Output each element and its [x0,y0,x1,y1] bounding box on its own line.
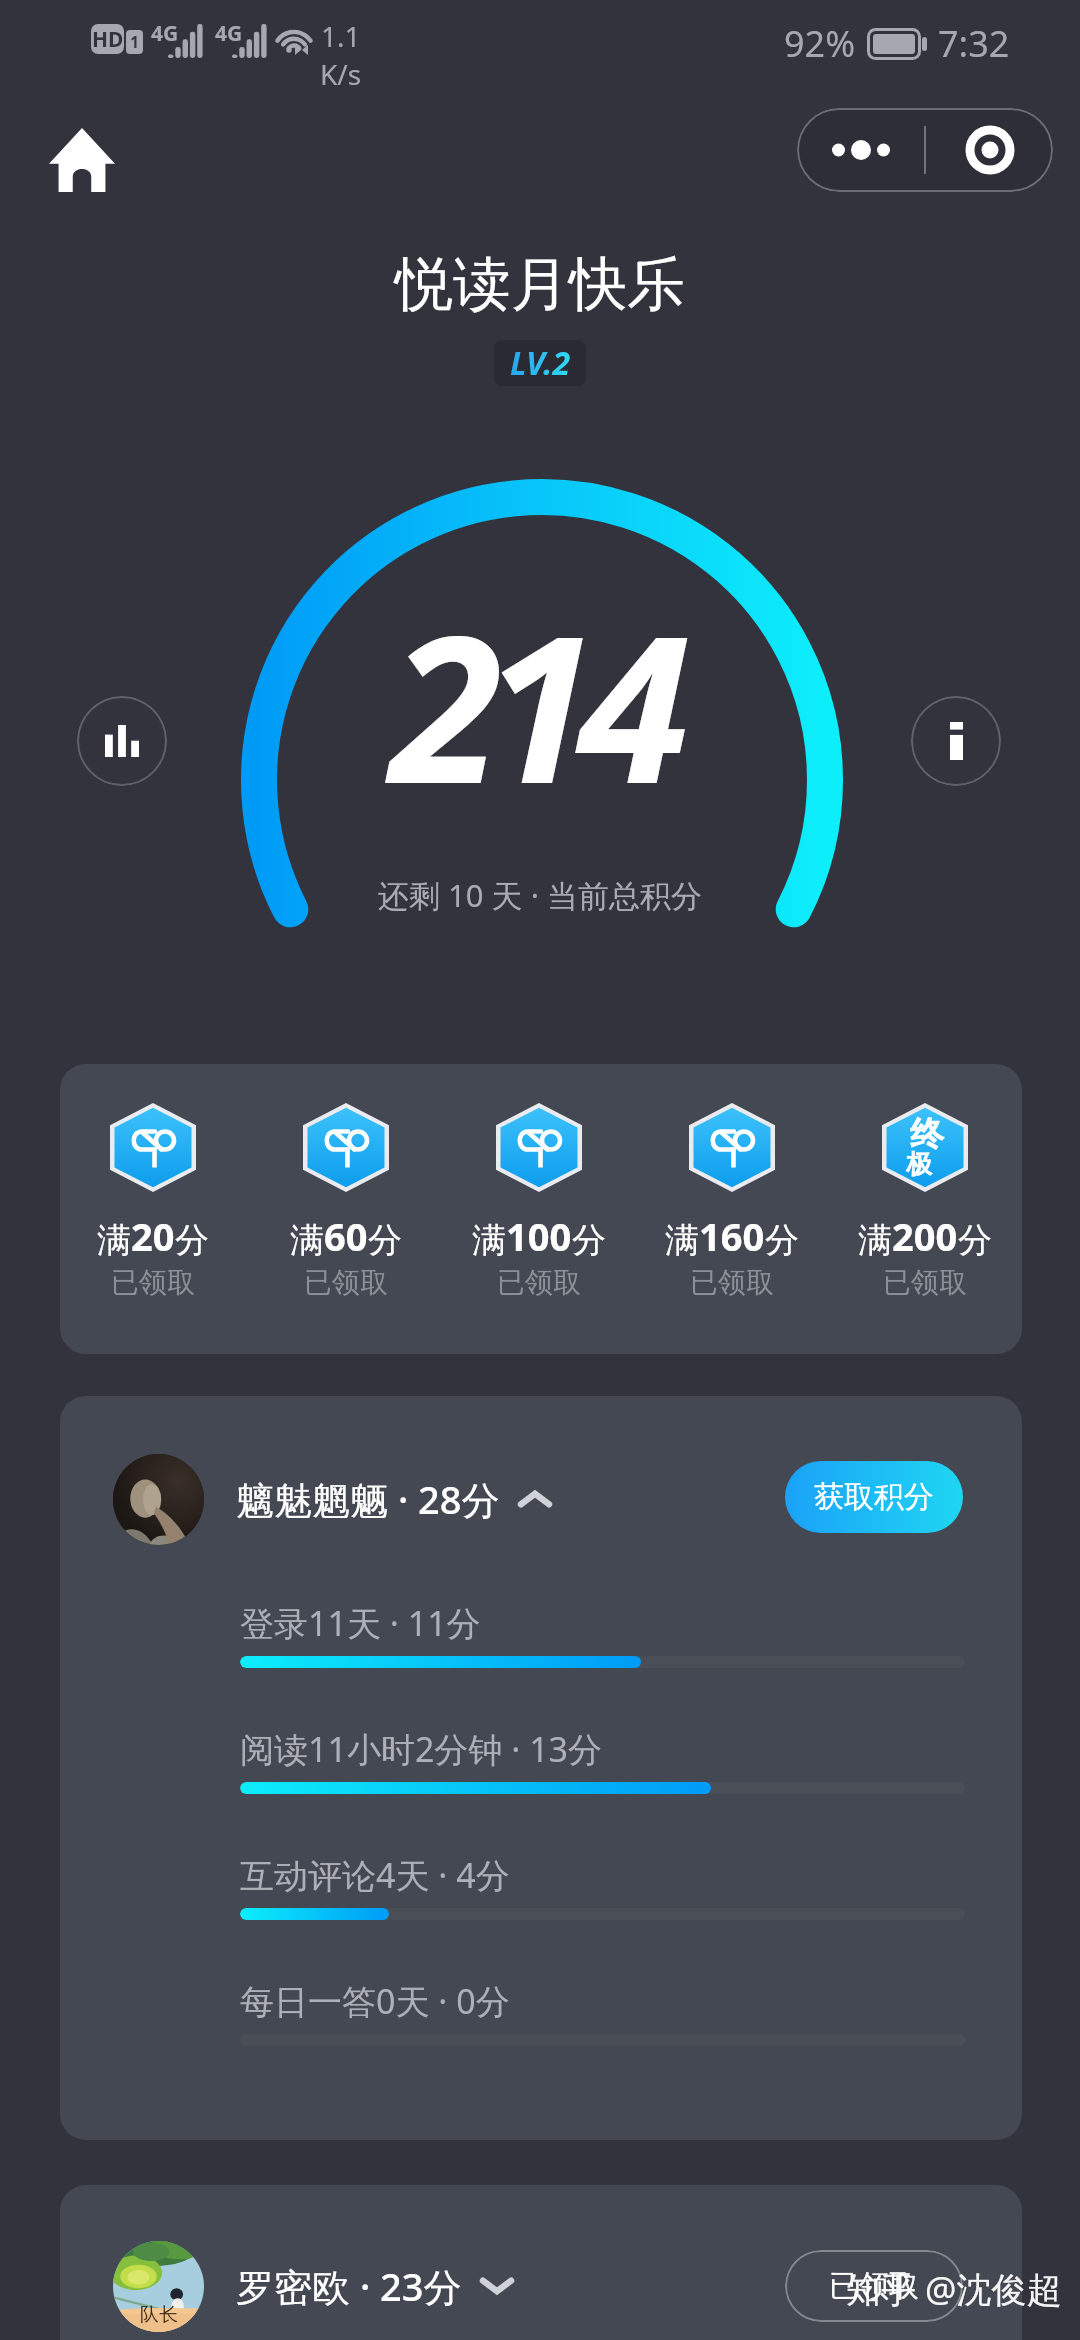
staticText: 200 [892,1210,958,1262]
button[interactable]: Statistics [77,696,167,786]
button[interactable]: 获取积分 [785,1461,963,1533]
staticText: 60 [324,1210,368,1262]
button[interactable]: Close mini program [926,108,1053,192]
staticText: 160 [699,1210,765,1262]
staticText: 分 [572,1219,606,1262]
staticText: 获取积分 [814,1478,934,1516]
button[interactable]: 满 [447,1103,631,1300]
button[interactable]: Home [36,112,128,208]
button[interactable]: 魑魅魍魉 · 28分 [113,1453,673,1545]
staticText: 已领取 [304,1265,388,1300]
staticText: 100 [506,1210,572,1262]
staticText: 已领取 [883,1265,967,1300]
button[interactable]: Information [911,696,1001,786]
staticText: 满 [858,1219,892,1262]
staticText: 悦读月快乐 [395,248,685,321]
staticText: 分 [765,1219,799,1262]
staticText: 满 [97,1219,131,1262]
staticText: 极 [906,1148,932,1181]
staticText: 7:32 [938,19,1010,68]
staticText: 4G [215,19,243,48]
staticText: 还剩 10 天 · 当前总积分 [378,874,703,916]
staticText: 终 [910,1113,944,1156]
staticText: 登录11天 · 11分 [240,1600,481,1646]
staticText: HD [92,25,124,54]
button[interactable]: 满 [254,1103,438,1300]
staticText: 1 [130,31,140,53]
staticText: K/s [320,55,362,93]
button[interactable]: 已领取 [785,2250,963,2322]
button[interactable]: 队长 [113,2240,653,2332]
button[interactable]: LV.2 [494,340,586,386]
staticText: 分 [368,1219,402,1262]
staticText: 已领取 [111,1265,195,1300]
staticText: 互动评论4天 · 4分 [240,1852,510,1898]
staticText: LV.2 [510,341,571,385]
staticText: 知乎 @沈俊超 [846,2265,1062,2313]
button[interactable]: 满 [61,1103,245,1300]
staticText: 92% [784,19,856,68]
staticText: 已领取 [497,1265,581,1300]
staticText: 满 [472,1219,506,1262]
staticText: 已领取 [829,2267,919,2305]
staticText: 已领取 [690,1265,774,1300]
staticText: 满 [290,1219,324,1262]
button[interactable]: 终 [833,1103,1017,1300]
staticText: 分 [175,1219,209,1262]
staticText: 4G [151,19,179,48]
staticText: 1.1 [321,17,361,55]
button[interactable]: More options [797,108,924,192]
staticText: 20 [131,1210,175,1262]
staticText: 罗密欧 · 23分 [236,2260,462,2312]
staticText: 满 [665,1219,699,1262]
staticText: 阅读11小时2分钟 · 13分 [240,1726,603,1772]
staticText: 每日一答0天 · 0分 [240,1978,510,2024]
staticText: 214 [390,566,672,842]
staticText: 队长 [140,2303,178,2327]
staticText: 分 [958,1219,992,1262]
button[interactable]: 满 [640,1103,824,1300]
staticText: 魑魅魍魉 · 28分 [236,1473,500,1525]
